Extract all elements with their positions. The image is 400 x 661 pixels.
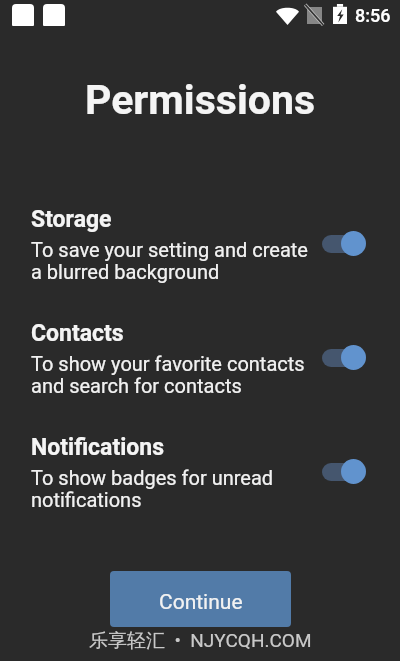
button[interactable]: Toggle Contacts [322,344,366,370]
staticText: Permissions [0,76,400,124]
button[interactable]: Notifications [31,434,318,512]
staticText: Notifications [31,434,165,461]
button[interactable]: Storage [31,206,318,284]
staticText: To show badges for unread notifications [31,466,274,512]
staticText: To save your setting and create a blurre… [31,238,308,284]
staticText: To show your favorite contacts and searc… [31,352,305,398]
button[interactable]: Toggle Notifications [322,458,366,484]
button[interactable]: Contacts [31,320,318,398]
staticText: 乐享轻汇 • NJYCQH.COM [89,629,312,653]
button[interactable]: Continue [110,571,291,627]
staticText: Storage [31,206,112,233]
staticText: Contacts [31,320,124,347]
staticText: Continue [159,590,243,615]
staticText: 8:56 [355,5,391,26]
button[interactable]: Toggle Storage [322,230,366,256]
